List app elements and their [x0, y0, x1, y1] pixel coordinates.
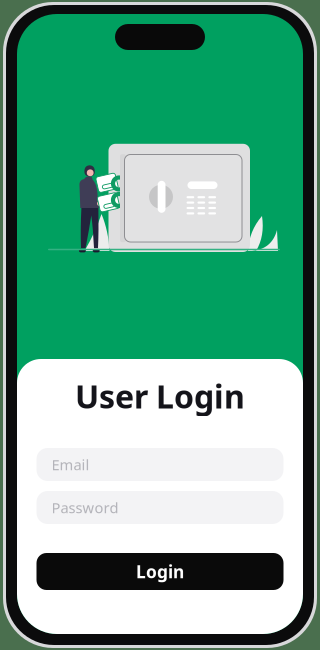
button[interactable]: Password — [36, 491, 283, 524]
staticText: Email — [51, 455, 89, 474]
staticText: Login — [136, 560, 184, 583]
staticText: Password — [51, 498, 118, 517]
button[interactable]: Email — [36, 448, 283, 481]
button[interactable]: Login — [36, 553, 283, 590]
staticText: User Login — [75, 375, 245, 417]
